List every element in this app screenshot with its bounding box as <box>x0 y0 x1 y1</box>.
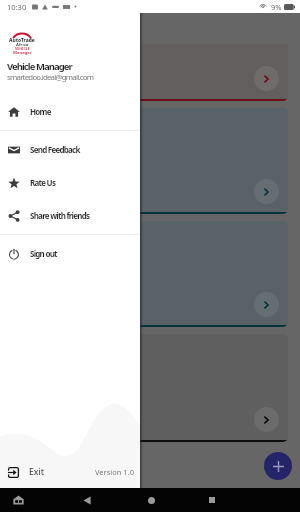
button[interactable]: Send Feedback <box>0 133 140 166</box>
button[interactable]: Open details <box>9 334 288 442</box>
staticText: Share with friends <box>30 210 90 221</box>
staticText: Version 1.0 <box>95 467 134 477</box>
staticText: 10:30 <box>7 2 27 12</box>
button[interactable]: Sign out <box>0 237 140 270</box>
staticText: Manager <box>13 50 32 56</box>
button[interactable]: Open details <box>9 108 288 214</box>
button[interactable]: Rate Us <box>0 166 140 199</box>
button[interactable]: Open details <box>254 407 279 432</box>
button[interactable]: Open details <box>254 179 279 204</box>
button[interactable]: Recents <box>202 490 222 510</box>
button[interactable]: Exit <box>8 464 44 480</box>
staticText: 9% <box>271 2 282 12</box>
button[interactable]: Share with friends <box>0 199 140 232</box>
staticText: Exit <box>29 466 44 478</box>
button[interactable]: Open details <box>254 66 279 91</box>
staticText: Vehicle Manager <box>7 60 72 73</box>
staticText: Rate Us <box>30 177 56 188</box>
button[interactable]: Home <box>0 95 140 128</box>
staticText: Send Feedback <box>30 144 80 155</box>
button[interactable]: Assistant <box>141 490 161 510</box>
button[interactable]: Open details <box>254 292 279 317</box>
button[interactable]: Back <box>77 490 97 510</box>
staticText: VEHICLE <box>15 46 30 51</box>
staticText: smartedoo.ideal@gmail.com <box>7 72 94 83</box>
staticText: Home <box>30 106 51 117</box>
button[interactable]: Open details <box>9 221 288 327</box>
button[interactable]: Home <box>8 490 28 510</box>
button[interactable]: Add vehicle <box>264 452 292 480</box>
staticText: AutoTrader <box>9 37 35 44</box>
staticText: Sign out <box>30 248 57 259</box>
staticText: Africa <box>16 42 29 48</box>
button[interactable]: Open details <box>9 44 288 101</box>
